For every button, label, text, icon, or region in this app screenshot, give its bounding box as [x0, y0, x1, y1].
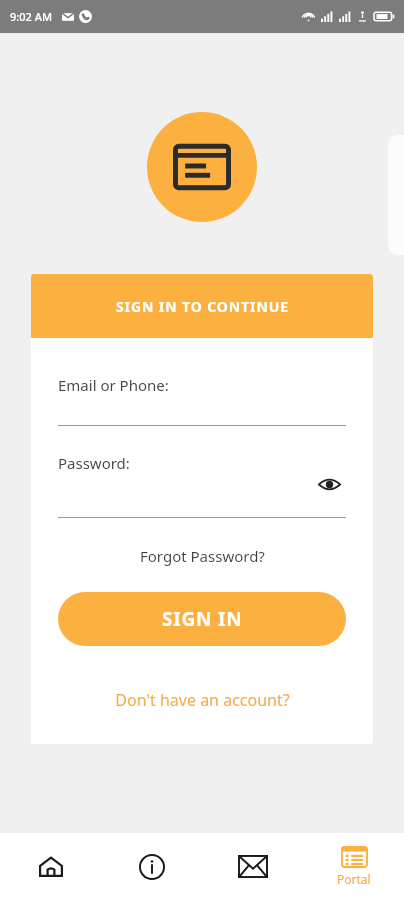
button[interactable]: Home	[0, 833, 101, 900]
staticText: Password:	[58, 453, 130, 473]
button[interactable]: Don't have an account?	[111, 685, 294, 715]
button[interactable]: Messages	[202, 833, 303, 900]
button[interactable]: Show password	[312, 467, 346, 501]
staticText: Email or Phone:	[58, 375, 169, 395]
button[interactable]: SIGN IN	[58, 592, 346, 646]
staticText: 9:02 AM	[10, 9, 53, 24]
staticText: SIGN IN TO CONTINUE	[116, 297, 289, 316]
staticText: Portal	[337, 871, 371, 887]
staticText: SIGN IN	[162, 606, 243, 632]
button[interactable]: Portal	[303, 833, 404, 900]
button[interactable]: Information	[101, 833, 202, 900]
button[interactable]: Forgot Password?	[136, 542, 269, 570]
